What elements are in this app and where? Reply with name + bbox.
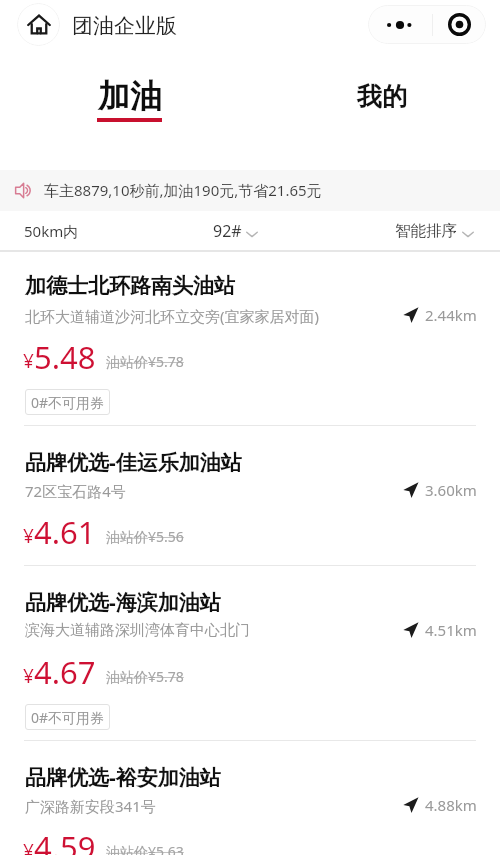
staticText: 广深路新安段341号 bbox=[25, 796, 156, 816]
staticText: 油站价¥5.56 bbox=[106, 527, 184, 546]
button[interactable]: 品牌优选-佳运乐加油站 bbox=[0, 426, 500, 566]
staticText: 72区宝石路4号 bbox=[25, 481, 126, 501]
staticText: 品牌优选-佳运乐加油站 bbox=[25, 448, 242, 477]
staticText: 车主8879,10秒前,加油190元,节省21.65元 bbox=[44, 180, 322, 200]
staticText: 油站价¥5.78 bbox=[106, 667, 184, 686]
staticText: 4.88km bbox=[425, 795, 477, 815]
button[interactable]: Target bbox=[433, 5, 486, 44]
staticText: 加德士北环路南头油站 bbox=[25, 273, 235, 299]
staticText: 团油企业版 bbox=[72, 13, 177, 39]
staticText: 2.44km bbox=[425, 305, 477, 325]
staticText: 品牌优选-海滨加油站 bbox=[25, 588, 221, 617]
staticText: 滨海大道辅路深圳湾体育中心北门 bbox=[25, 621, 250, 640]
button[interactable]: 加德士北环路南头油站 bbox=[0, 251, 500, 426]
staticText: ¥ bbox=[23, 523, 34, 549]
staticText: 北环大道辅道沙河北环立交旁(宜家家居对面) bbox=[25, 306, 320, 326]
button[interactable]: 92# bbox=[207, 211, 264, 250]
button[interactable]: 智能排序 bbox=[389, 211, 480, 250]
button[interactable]: 加油 bbox=[79, 62, 180, 136]
button[interactable]: 品牌优选-海滨加油站 bbox=[0, 566, 500, 741]
staticText: 4.59 bbox=[34, 826, 96, 855]
staticText: 油站价¥5.63 bbox=[106, 842, 184, 855]
staticText: 4.51km bbox=[425, 620, 477, 640]
staticText: 50km内 bbox=[24, 221, 79, 241]
staticText: 92# bbox=[213, 220, 242, 242]
button[interactable]: 品牌优选-裕安加油站 bbox=[0, 741, 500, 855]
staticText: 5.48 bbox=[34, 336, 96, 378]
staticText: 4.67 bbox=[34, 651, 96, 693]
button[interactable]: 50km内 bbox=[18, 211, 85, 250]
staticText: ¥ bbox=[23, 663, 34, 689]
staticText: 0#不可用券 bbox=[31, 708, 105, 727]
staticText: 智能排序 bbox=[395, 221, 457, 241]
button[interactable]: More options bbox=[368, 5, 432, 44]
staticText: 加油 bbox=[98, 76, 162, 116]
button[interactable]: Home bbox=[17, 3, 60, 46]
staticText: 品牌优选-裕安加油站 bbox=[25, 763, 221, 792]
staticText: 0#不可用券 bbox=[31, 393, 105, 412]
staticText: ¥ bbox=[23, 348, 34, 374]
staticText: 3.60km bbox=[425, 480, 477, 500]
staticText: 我的 bbox=[357, 81, 407, 112]
staticText: ¥ bbox=[23, 838, 34, 855]
staticText: 4.61 bbox=[34, 511, 96, 553]
button[interactable]: 我的 bbox=[339, 67, 425, 126]
staticText: 油站价¥5.78 bbox=[106, 352, 184, 371]
